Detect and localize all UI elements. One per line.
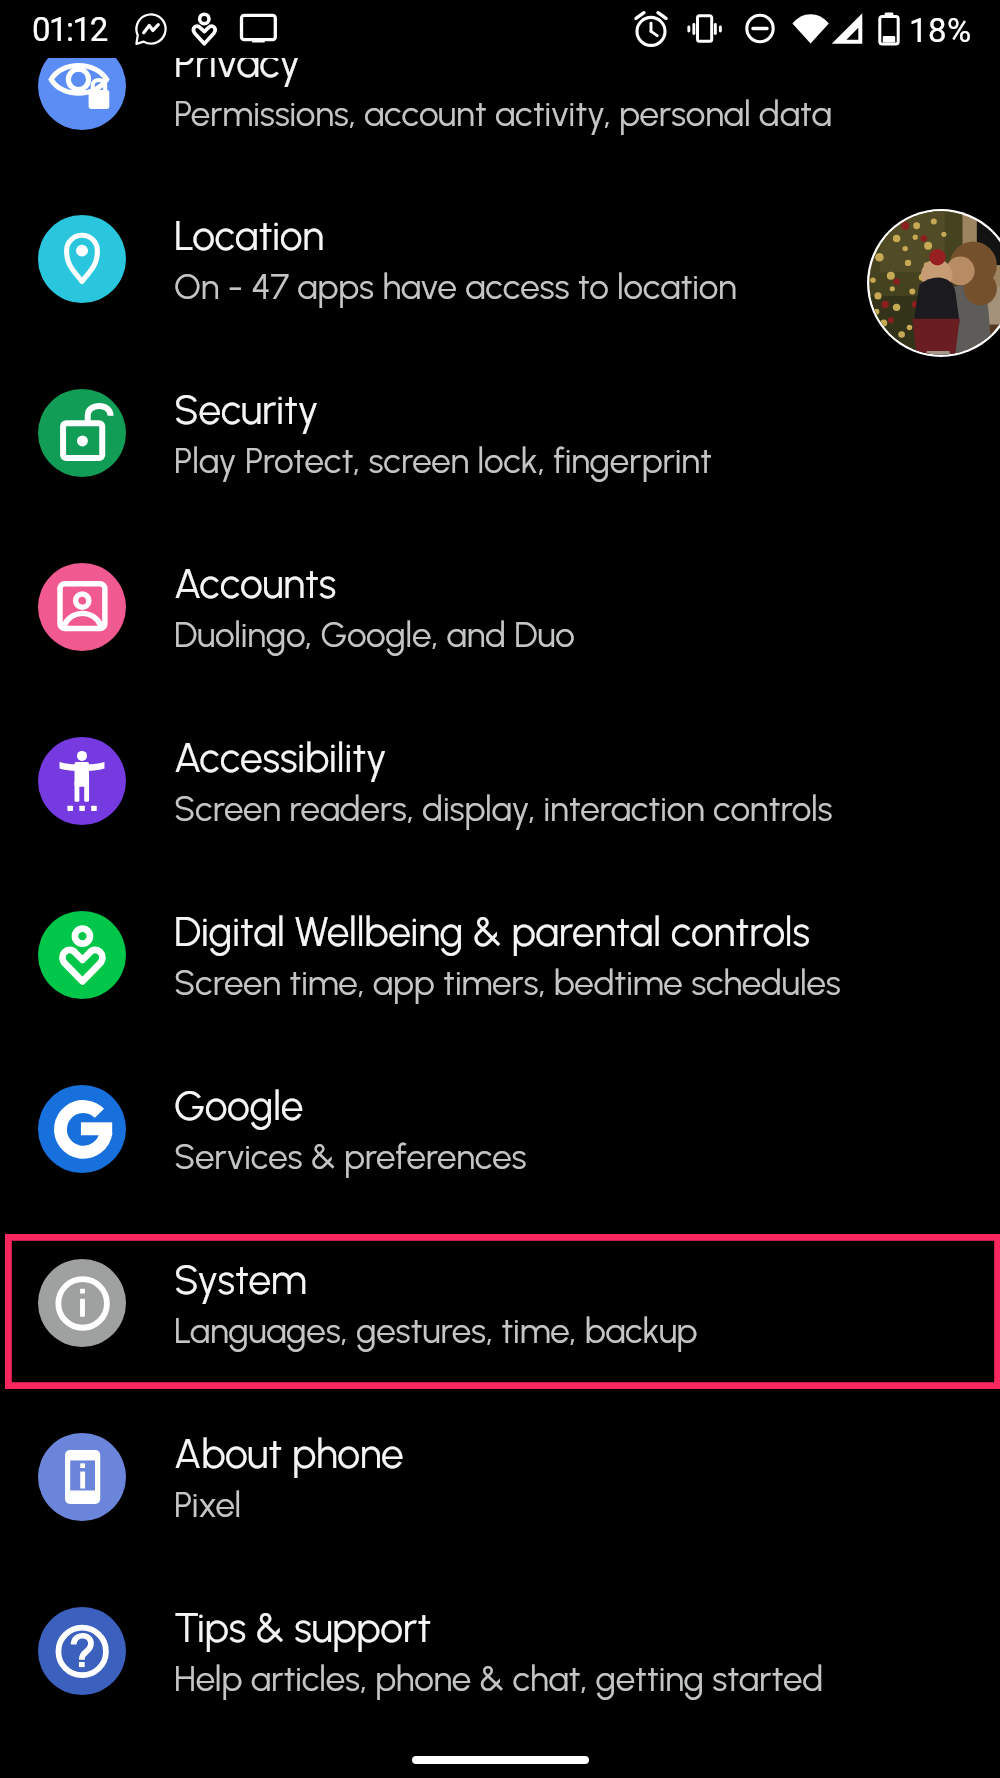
staticText: Languages, gestures, time, backup bbox=[174, 1310, 698, 1352]
staticText: Screen readers, display, interaction con… bbox=[174, 788, 833, 830]
button[interactable]: Location bbox=[0, 172, 1000, 346]
staticText: Help articles, phone & chat, getting sta… bbox=[174, 1658, 824, 1700]
button[interactable]: Privacy bbox=[0, 0, 1000, 173]
button[interactable]: Accessibility bbox=[0, 694, 1000, 868]
staticText: Privacy bbox=[174, 39, 301, 88]
staticText: Services & preferences bbox=[174, 1136, 527, 1178]
button[interactable]: Google bbox=[0, 1042, 1000, 1216]
staticText: Location bbox=[174, 212, 324, 261]
staticText: Accessibility bbox=[174, 734, 387, 783]
button[interactable]: Tips & support bbox=[0, 1564, 1000, 1738]
staticText: Accounts bbox=[174, 560, 337, 609]
button[interactable]: Security bbox=[0, 346, 1000, 520]
staticText: Play Protect, screen lock, fingerprint bbox=[174, 440, 712, 482]
button[interactable]: Accounts bbox=[0, 520, 1000, 694]
button[interactable]: About phone bbox=[0, 1390, 1000, 1564]
staticText: 18% bbox=[909, 11, 972, 50]
staticText: Duolingo, Google, and Duo bbox=[174, 614, 575, 656]
staticText: On - 47 apps have access to location bbox=[174, 266, 737, 308]
staticText: Screen time, app timers, bedtime schedul… bbox=[174, 962, 841, 1004]
staticText: System bbox=[174, 1256, 307, 1305]
button[interactable]: Digital Wellbeing & parental controls bbox=[0, 868, 1000, 1042]
staticText: Google bbox=[174, 1082, 304, 1131]
staticText: Permissions, account activity, personal … bbox=[174, 93, 832, 135]
button[interactable]: Profile photo bbox=[867, 209, 1000, 357]
staticText: Tips & support bbox=[174, 1604, 432, 1653]
staticText: About phone bbox=[174, 1430, 404, 1479]
staticText: 01:12 bbox=[32, 10, 107, 49]
staticText: Pixel bbox=[174, 1484, 242, 1526]
staticText: Digital Wellbeing & parental controls bbox=[174, 908, 810, 957]
button[interactable]: System bbox=[0, 1216, 1000, 1390]
staticText: Security bbox=[174, 386, 319, 435]
